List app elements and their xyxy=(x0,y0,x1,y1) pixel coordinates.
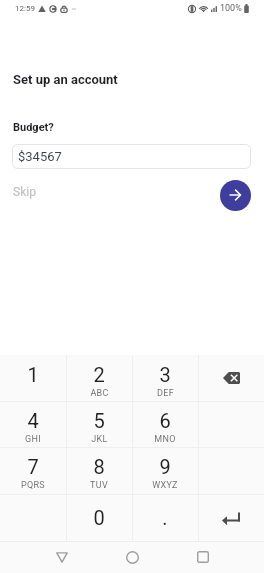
button[interactable]: 7 xyxy=(0,447,66,494)
button[interactable]: 6 xyxy=(132,401,198,447)
staticText: 9 xyxy=(159,455,171,478)
button[interactable] xyxy=(198,494,264,541)
staticText: MNO xyxy=(154,434,176,445)
staticText: TUV xyxy=(90,480,108,491)
staticText: Set up an account xyxy=(13,72,118,87)
staticText: 0 xyxy=(93,506,105,529)
staticText: JKL xyxy=(91,434,108,445)
staticText: 1 xyxy=(27,363,39,386)
button[interactable] xyxy=(198,355,264,401)
button[interactable]: 3 xyxy=(132,355,198,401)
staticText: . xyxy=(162,506,168,529)
staticText: 2 xyxy=(93,363,105,386)
staticText: DEF xyxy=(157,388,174,399)
button[interactable]: Next xyxy=(220,180,251,211)
button[interactable]: . xyxy=(132,494,198,541)
button[interactable]: 8 xyxy=(66,447,132,494)
staticText: Budget? xyxy=(13,121,54,134)
button[interactable]: 5 xyxy=(66,401,132,447)
button[interactable]: Home xyxy=(115,541,149,573)
button[interactable]: 9 xyxy=(132,447,198,494)
staticText: $34567 xyxy=(18,149,62,164)
staticText: 100% xyxy=(220,3,242,14)
button[interactable]: 0 xyxy=(66,494,132,541)
staticText: ABC xyxy=(90,388,109,399)
staticText: 12:59 xyxy=(15,4,35,13)
staticText: GHI xyxy=(25,434,41,445)
staticText: 3 xyxy=(159,363,171,386)
staticText: 6 xyxy=(159,409,171,432)
staticText: 7 xyxy=(27,455,39,478)
staticText: 4 xyxy=(27,409,39,432)
button[interactable]: 4 xyxy=(0,401,66,447)
button[interactable]: 1 xyxy=(0,355,66,401)
button[interactable]: Recents xyxy=(186,541,220,573)
staticText: PQRS xyxy=(21,480,45,491)
button[interactable]: 2 xyxy=(66,355,132,401)
staticText: 5 xyxy=(93,409,105,432)
button[interactable]: Back xyxy=(45,541,79,573)
staticText: WXYZ xyxy=(152,480,178,491)
staticText: 8 xyxy=(93,455,105,478)
button[interactable]: Skip xyxy=(13,185,36,199)
button[interactable]: $34567 xyxy=(12,144,251,169)
